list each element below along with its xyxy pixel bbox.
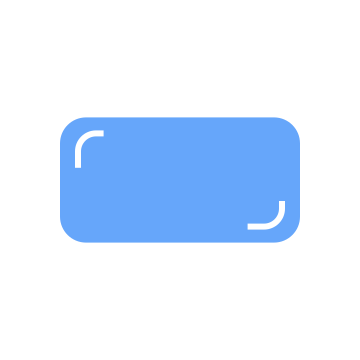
button[interactable]: Scan bbox=[60, 117, 300, 243]
